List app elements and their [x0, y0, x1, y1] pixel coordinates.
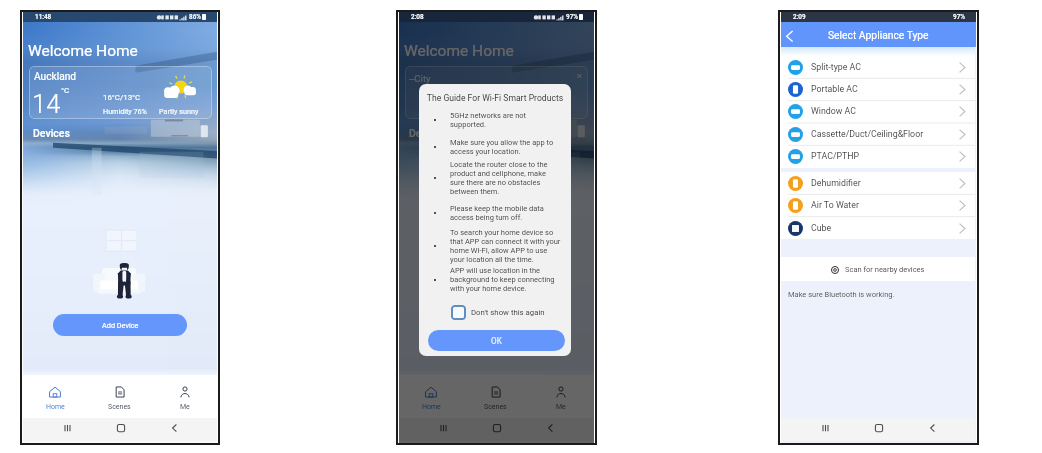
staticText: APP will use location in the background … — [450, 266, 561, 293]
staticText: Partly sunny — [159, 107, 199, 115]
staticText: Scenes — [484, 403, 507, 411]
button[interactable]: PTAC/PTHP — [781, 145, 975, 167]
staticText: 11:48 — [35, 13, 52, 21]
button[interactable]: Scenes — [87, 375, 152, 418]
button[interactable]: Me — [152, 375, 217, 418]
staticText: 16°C/13°C — [103, 93, 141, 102]
button[interactable]: Cube — [781, 217, 975, 239]
button[interactable]: Auckland — [29, 66, 212, 119]
staticText: Scan for nearby devices — [845, 265, 925, 274]
staticText: Add Device — [102, 321, 139, 330]
staticText: 97% — [566, 13, 578, 21]
staticText: OK — [491, 336, 502, 346]
staticText: °C — [61, 86, 70, 95]
staticText: Select Appliance Type — [828, 29, 929, 41]
staticText: Please keep the mobile data access being… — [450, 204, 561, 222]
staticText: Me — [556, 403, 566, 411]
staticText: Welcome Home — [404, 42, 514, 60]
button[interactable]: Me — [528, 375, 593, 418]
staticText: Devices — [33, 127, 70, 139]
button[interactable]: Cassette/Duct/Ceiling&Floor — [781, 123, 975, 145]
staticText: Don't show this again — [471, 308, 545, 317]
staticText: Portable AC — [811, 84, 959, 94]
staticText: Cube — [811, 223, 959, 233]
staticText: × — [577, 70, 583, 81]
staticText: Air To Water — [811, 200, 959, 210]
button[interactable]: Don't show this again — [451, 305, 545, 320]
staticText: Dehumidifier — [811, 178, 959, 188]
staticText: 2:08 — [411, 13, 424, 21]
staticText: Make sure you allow the app to access yo… — [450, 138, 561, 156]
button[interactable]: Air To Water — [781, 194, 975, 216]
staticText: Split-type AC — [811, 62, 959, 72]
staticText: Scenes — [108, 403, 131, 411]
button[interactable]: Portable AC — [781, 78, 975, 100]
staticText: Humidity 76% — [103, 107, 147, 115]
staticText: The Guide For Wi-Fi Smart Products — [419, 93, 571, 103]
button[interactable]: Scan for nearby devices — [781, 257, 975, 281]
staticText: 14 — [32, 89, 61, 119]
staticText: Cassette/Duct/Ceiling&Floor — [811, 129, 959, 139]
staticText: Auckland — [34, 71, 77, 83]
staticText: PTAC/PTHP — [811, 151, 959, 161]
button[interactable]: Home — [23, 375, 87, 418]
staticText: 5GHz networks are not supported. — [450, 111, 561, 129]
staticText: Devices — [409, 127, 446, 139]
staticText: 97% — [953, 13, 965, 21]
button[interactable]: Add Device — [53, 314, 187, 336]
staticText: To search your home device so that APP c… — [450, 228, 561, 264]
staticText: Locate the router close to the product a… — [450, 160, 561, 196]
staticText: Window AC — [811, 106, 959, 116]
staticText: 2:09 — [793, 13, 806, 21]
staticText: Home — [422, 403, 441, 411]
staticText: Home — [46, 403, 65, 411]
staticText: Me — [180, 403, 190, 411]
staticText: 86% — [189, 13, 201, 21]
button[interactable]: Dehumidifier — [781, 172, 975, 194]
button[interactable]: Window AC — [781, 100, 975, 122]
button[interactable]: Home — [399, 375, 463, 418]
button[interactable]: Scenes — [463, 375, 528, 418]
staticText: --City — [409, 73, 431, 84]
button[interactable]: OK — [428, 330, 565, 351]
button[interactable]: Back — [781, 22, 801, 47]
staticText: Make sure Bluetooth is working. — [788, 290, 895, 299]
staticText: Welcome Home — [28, 42, 138, 60]
button[interactable]: Split-type AC — [781, 56, 975, 78]
